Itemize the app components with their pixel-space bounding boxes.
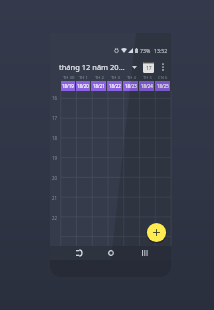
button[interactable]: 18/23: [123, 81, 138, 91]
staticText: 18: [52, 135, 58, 141]
staticText: 20: [52, 175, 58, 181]
button[interactable]: Recent apps: [134, 246, 154, 260]
button[interactable]: Home: [101, 246, 121, 260]
staticText: 22: [52, 215, 58, 221]
button[interactable]: 18/19: [61, 81, 75, 91]
staticText: TH 3: [111, 75, 120, 81]
staticText: CN 6: [158, 75, 168, 81]
staticText: TH 1: [79, 75, 88, 81]
button[interactable]: 18/24: [139, 81, 154, 91]
staticText: 17: [146, 65, 152, 72]
staticText: 18/21: [93, 83, 105, 89]
button[interactable]: More options: [158, 62, 168, 72]
staticText: 18/23: [125, 83, 137, 89]
staticText: 21: [52, 195, 58, 201]
button[interactable]: 18/20: [76, 81, 90, 91]
button[interactable]: Add event: [146, 222, 167, 243]
staticText: 17: [52, 115, 58, 121]
staticText: TH 2: [95, 75, 104, 81]
staticText: TH 5: [143, 75, 152, 81]
button[interactable]: Expand month: [130, 63, 139, 72]
staticText: 18/20: [77, 83, 89, 89]
staticText: 18/22: [109, 83, 121, 89]
staticText: 18/25: [157, 83, 169, 89]
button[interactable]: 18/25: [155, 81, 170, 91]
staticText: tháng 12 năm 20…: [59, 62, 125, 72]
staticText: 19: [52, 155, 58, 161]
staticText: 18/19: [62, 83, 74, 89]
staticText: 13:52: [154, 47, 168, 54]
staticText: 18/24: [141, 83, 153, 89]
staticText: TH 4: [127, 75, 136, 81]
button[interactable]: 18/22: [107, 81, 122, 91]
button[interactable]: Back: [68, 246, 88, 260]
staticText: TH 30: [63, 75, 75, 81]
staticText: 16: [52, 95, 58, 101]
button[interactable]: 18/21: [91, 81, 106, 91]
staticText: 73%: [140, 47, 151, 54]
button[interactable]: Go to today: [143, 62, 154, 73]
